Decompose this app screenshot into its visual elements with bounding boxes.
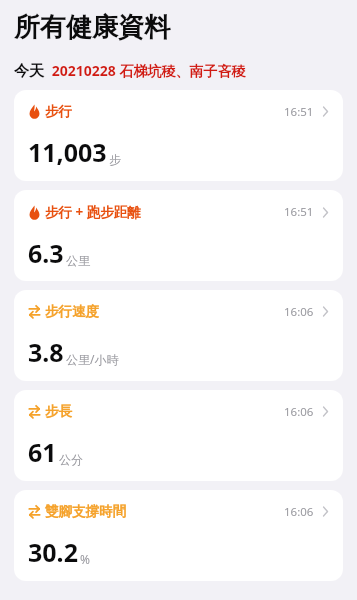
button[interactable]: 雙腳支撐時間 xyxy=(14,490,343,581)
button[interactable]: 步行速度 xyxy=(14,290,343,381)
button[interactable]: 步長 xyxy=(14,390,343,481)
staticText: 公里 xyxy=(66,253,90,268)
staticText: 步長 xyxy=(45,403,72,420)
staticText: 公分 xyxy=(59,452,83,467)
staticText: 3.8 xyxy=(28,335,64,369)
staticText: 步行 + 跑步距離 xyxy=(45,203,141,221)
staticText: 30.2 xyxy=(28,535,78,569)
staticText: 步 xyxy=(109,152,121,167)
staticText: 16:06 xyxy=(284,504,314,520)
button[interactable]: 步行 + 跑步距離 xyxy=(14,190,343,281)
staticText: 今天 20210228 石梯坑稜、南子吝稜 xyxy=(14,60,246,80)
staticText: 6.3 xyxy=(28,236,64,270)
staticText: % xyxy=(80,551,90,567)
staticText: 16:51 xyxy=(284,104,314,120)
staticText: 公里/小時 xyxy=(66,351,119,367)
staticText: 16:06 xyxy=(284,404,314,420)
staticText: 步行速度 xyxy=(45,303,99,320)
staticText: 雙腳支撐時間 xyxy=(45,503,126,520)
button[interactable]: 步行 xyxy=(14,90,343,181)
staticText: 步行 xyxy=(45,103,72,120)
staticText: 61 xyxy=(28,435,57,469)
staticText: 所有健康資料 xyxy=(14,11,170,44)
staticText: 16:06 xyxy=(284,304,314,320)
staticText: 16:51 xyxy=(284,204,314,220)
staticText: 11,003 xyxy=(28,135,107,169)
